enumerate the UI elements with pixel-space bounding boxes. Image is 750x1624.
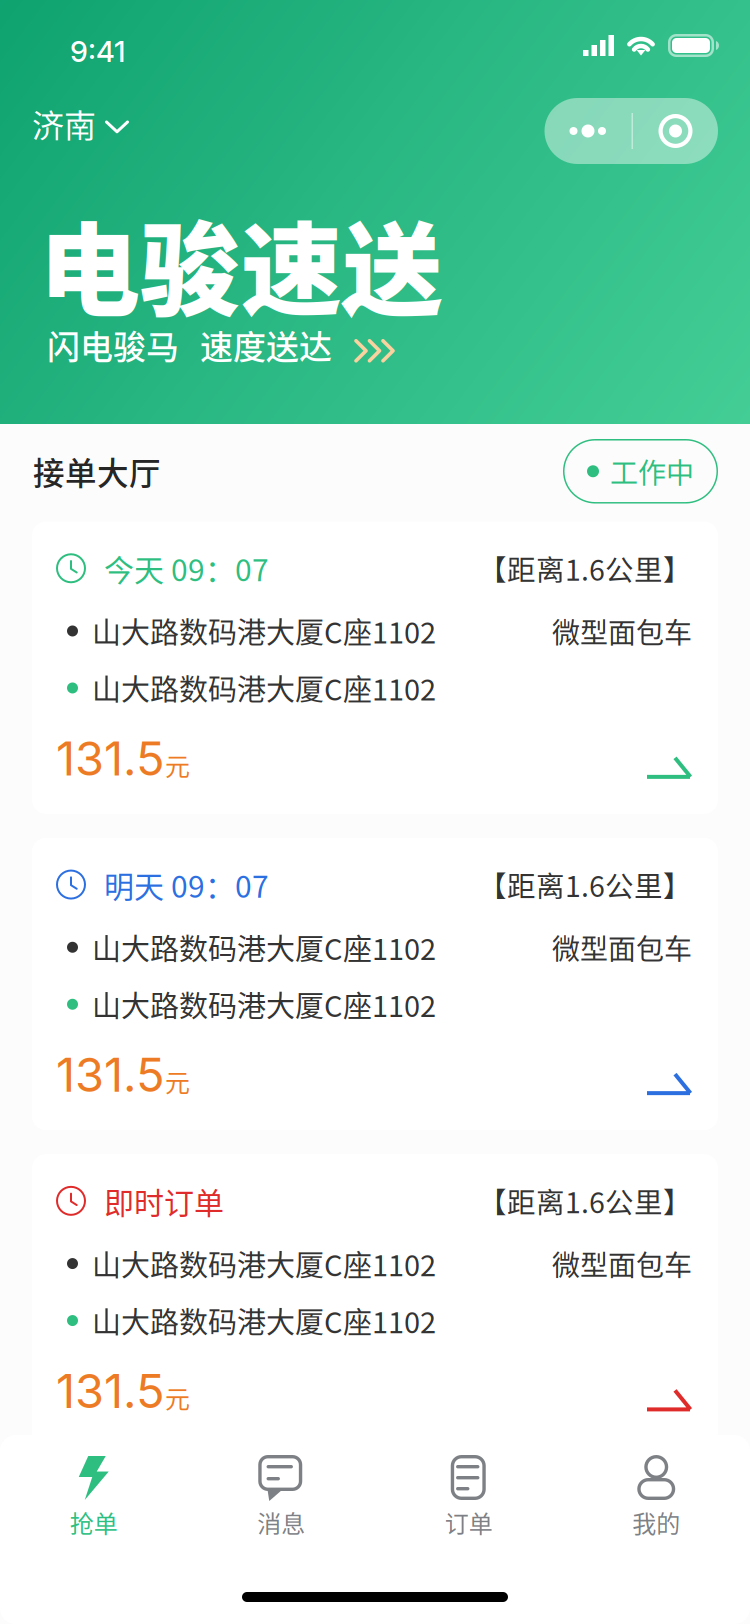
staticText: 消息 bbox=[257, 1505, 305, 1540]
staticText: 山大路数码港大厦C座1102 bbox=[92, 983, 436, 1025]
staticText: 微型面包车 bbox=[552, 1243, 692, 1284]
staticText: 131.5 bbox=[56, 730, 165, 787]
staticText: 【距离1.6公里】 bbox=[478, 548, 692, 589]
staticText: 山大路数码港大厦C座1102 bbox=[92, 610, 436, 652]
staticText: 今天 09：07 bbox=[104, 546, 269, 590]
button[interactable]: 即时订单 bbox=[32, 1154, 718, 1446]
staticText: 山大路数码港大厦C座1102 bbox=[92, 1300, 436, 1342]
staticText: 即时订单 bbox=[104, 1179, 224, 1222]
staticText: 9:41 bbox=[70, 34, 125, 69]
staticText: 山大路数码港大厦C座1102 bbox=[92, 1243, 436, 1285]
button[interactable]: 更多 bbox=[544, 98, 631, 164]
staticText: 131.5 bbox=[56, 1046, 165, 1103]
button[interactable]: 济南 bbox=[0, 94, 129, 153]
button[interactable]: 胶囊 bbox=[633, 98, 718, 164]
staticText: 131.5 bbox=[56, 1362, 165, 1419]
staticText: 工作中 bbox=[610, 451, 694, 491]
staticText: 元 bbox=[165, 1063, 190, 1099]
staticText: 元 bbox=[165, 1379, 190, 1415]
button[interactable]: 今天 09：07 bbox=[32, 521, 718, 814]
staticText: 明天 09：07 bbox=[104, 863, 269, 906]
button[interactable]: 我的 bbox=[562, 1443, 750, 1548]
button[interactable]: 订单 bbox=[375, 1443, 562, 1548]
staticText: 元 bbox=[165, 747, 190, 783]
staticText: 接单大厅 bbox=[33, 448, 161, 494]
staticText: 【距离1.6公里】 bbox=[478, 1180, 692, 1221]
button[interactable]: 工作中 bbox=[563, 439, 718, 503]
staticText: 【距离1.6公里】 bbox=[478, 864, 692, 905]
button[interactable]: 明天 09：07 bbox=[32, 838, 718, 1130]
staticText: 电骏速送 bbox=[39, 190, 443, 336]
staticText: 微型面包车 bbox=[552, 927, 692, 967]
staticText: 济南 bbox=[32, 100, 96, 147]
button[interactable]: 消息 bbox=[187, 1443, 375, 1548]
staticText: 闪电骏马 速度送达 bbox=[47, 321, 332, 369]
staticText: 订单 bbox=[445, 1505, 493, 1540]
staticText: 抢单 bbox=[70, 1505, 118, 1540]
button[interactable]: 抢单 bbox=[0, 1443, 187, 1548]
staticText: 山大路数码港大厦C座1102 bbox=[92, 667, 436, 709]
staticText: 我的 bbox=[632, 1505, 680, 1540]
staticText: 山大路数码港大厦C座1102 bbox=[92, 926, 436, 968]
staticText: 微型面包车 bbox=[552, 611, 692, 651]
